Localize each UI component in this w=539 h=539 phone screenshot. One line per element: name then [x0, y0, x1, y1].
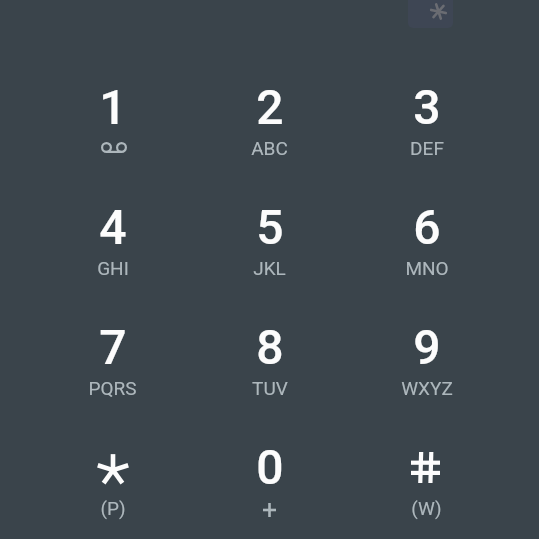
button[interactable]: 4	[34, 199, 191, 319]
button[interactable]: 7	[34, 319, 191, 439]
staticText: 6	[413, 203, 441, 255]
staticText: WXYZ	[401, 378, 453, 400]
button[interactable]: 6	[348, 199, 505, 319]
staticText: MNO	[405, 258, 449, 280]
staticText: PQRS	[88, 378, 137, 400]
button[interactable]: 2	[191, 79, 348, 199]
staticText: DEF	[410, 138, 444, 160]
staticText: 1	[99, 83, 127, 135]
staticText: 7	[99, 323, 127, 375]
staticText: (P)	[100, 498, 126, 520]
button[interactable]: (P)	[34, 439, 191, 539]
staticText: 3	[413, 83, 441, 135]
button[interactable]: 5	[191, 199, 348, 319]
staticText: 5	[256, 203, 284, 255]
staticText: 2	[256, 83, 284, 135]
staticText: JKL	[253, 258, 286, 280]
button[interactable]: 8	[191, 319, 348, 439]
button[interactable]: 3	[348, 79, 505, 199]
button[interactable]: (W)	[348, 439, 505, 539]
staticText: GHI	[97, 258, 129, 280]
button[interactable]: Dialpad options	[408, 0, 453, 28]
button[interactable]: 1	[34, 79, 191, 199]
staticText: (W)	[411, 498, 442, 520]
staticText: 4	[99, 203, 127, 255]
button[interactable]: 0	[191, 439, 348, 539]
staticText: TUV	[252, 378, 288, 400]
staticText: 9	[413, 323, 441, 375]
staticText: 0	[256, 443, 284, 495]
staticText: ABC	[251, 138, 288, 160]
staticText: 8	[256, 323, 284, 375]
button[interactable]: 9	[348, 319, 505, 439]
